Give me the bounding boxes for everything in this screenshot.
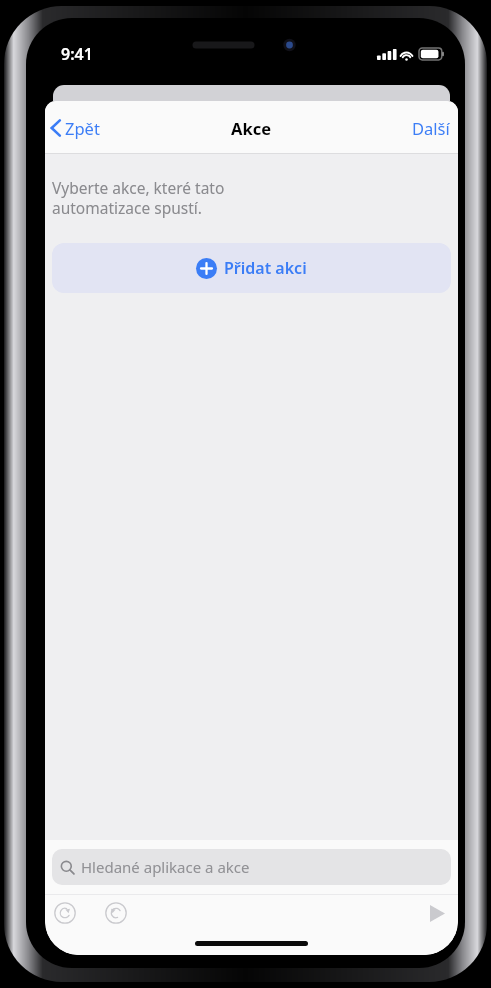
- button[interactable]: Přidat akci: [52, 243, 451, 293]
- button[interactable]: Zpět: [45, 111, 108, 145]
- staticText: Vyberte akce, které tato automatizace sp…: [52, 177, 225, 219]
- staticText: Přidat akci: [224, 257, 307, 279]
- staticText: Další: [412, 117, 450, 139]
- button[interactable]: Undo: [50, 898, 80, 928]
- button[interactable]: Run: [426, 901, 449, 926]
- staticText: Hledané aplikace a akce: [81, 857, 250, 877]
- staticText: Zpět: [65, 117, 100, 139]
- button[interactable]: Hledané aplikace a akce: [52, 849, 451, 885]
- button[interactable]: Redo: [101, 898, 131, 928]
- staticText: 9:41: [61, 43, 93, 65]
- button[interactable]: Další: [404, 111, 458, 145]
- staticText: Akce: [231, 117, 272, 139]
